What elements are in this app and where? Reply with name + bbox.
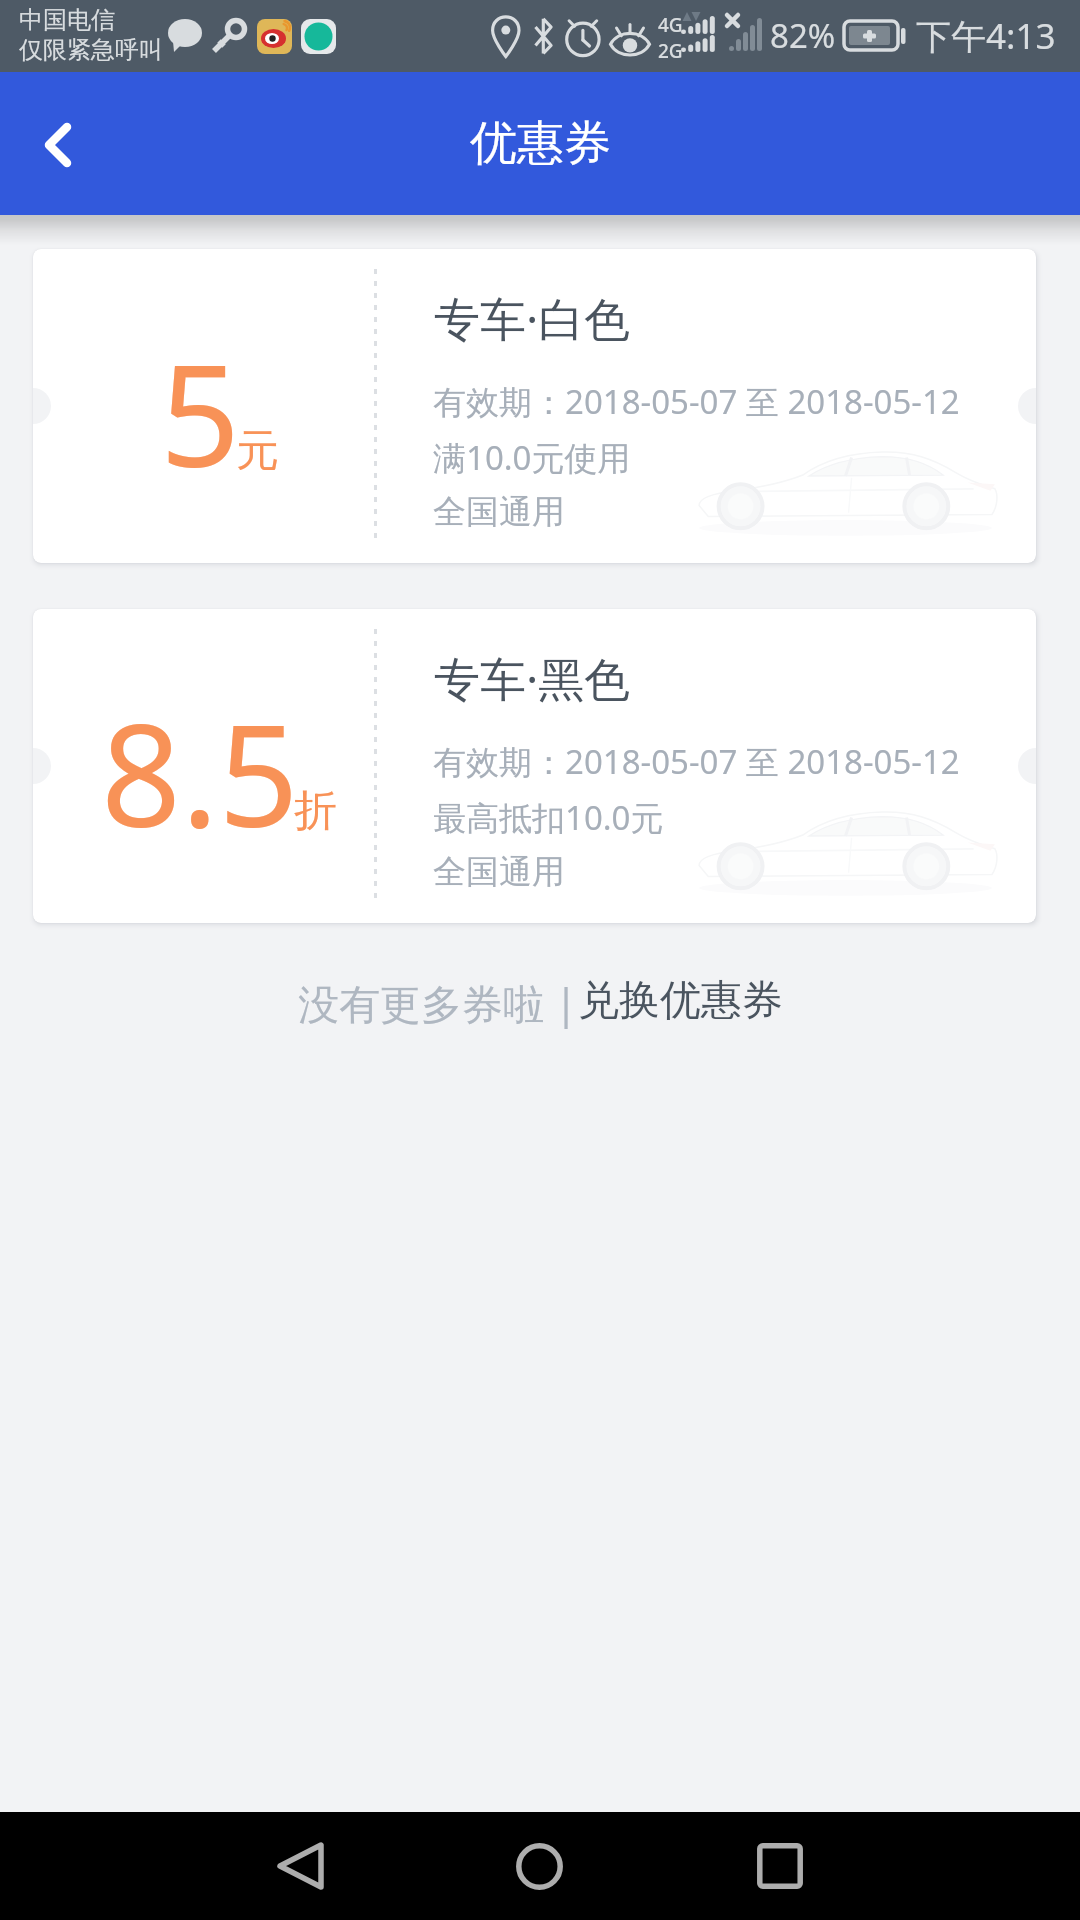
- staticText: 兑换优惠券: [578, 975, 783, 1027]
- staticText: 没有更多券啦 |: [298, 975, 578, 1031]
- staticText: 5: [160, 317, 241, 508]
- staticText: 8.5: [101, 677, 299, 868]
- button[interactable]: 8.5: [33, 609, 1036, 923]
- staticText: 专车·白色: [434, 287, 631, 350]
- button[interactable]: 兑换优惠券: [578, 975, 783, 1027]
- button[interactable]: Home: [464, 1812, 614, 1920]
- staticText: 全国通用: [433, 491, 565, 533]
- staticText: 82%: [770, 13, 836, 58]
- staticText: 全国通用: [433, 851, 565, 893]
- button[interactable]: Back: [0, 72, 110, 215]
- staticText: 专车·黑色: [434, 647, 631, 710]
- staticText: 有效期：2018-05-07 至 2018-05-12: [433, 379, 960, 424]
- staticText: 2G: [658, 38, 683, 64]
- staticText: 最高抵扣10.0元: [433, 795, 664, 840]
- button[interactable]: Recents: [705, 1812, 855, 1920]
- staticText: 中国电信: [19, 5, 115, 35]
- staticText: 元: [236, 424, 279, 478]
- staticText: 有效期：2018-05-07 至 2018-05-12: [433, 739, 960, 784]
- staticText: 4G: [658, 12, 683, 38]
- staticText: 折: [294, 784, 337, 838]
- button[interactable]: Back: [225, 1812, 375, 1920]
- staticText: 下午4:13: [916, 12, 1056, 60]
- button[interactable]: 5: [33, 249, 1036, 563]
- staticText: 仅限紧急呼叫: [19, 35, 163, 65]
- staticText: 满10.0元使用: [433, 435, 631, 480]
- staticText: 优惠券: [470, 114, 611, 173]
